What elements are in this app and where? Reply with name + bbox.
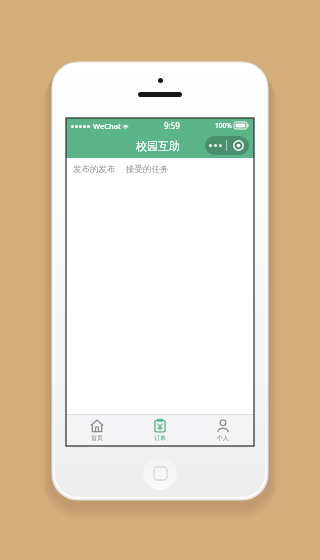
staticText: 校园互助 <box>136 139 180 153</box>
button[interactable]: More options <box>205 136 249 155</box>
staticText: 首页 <box>91 434 103 442</box>
staticText: WeChat <box>93 121 121 131</box>
staticText: 订单 <box>154 434 166 442</box>
button[interactable]: Home button <box>143 456 177 490</box>
staticText: 发布的发布 <box>73 164 116 175</box>
staticText: 9:59 <box>164 120 180 131</box>
staticText: 个人 <box>217 434 229 442</box>
button[interactable]: 个人 <box>191 415 254 446</box>
button[interactable]: 订单 <box>128 415 191 446</box>
button[interactable]: 首页 <box>66 415 128 446</box>
button[interactable]: 发布的发布 <box>72 161 117 178</box>
staticText: 接受的任务 <box>126 164 169 175</box>
button[interactable]: 接受的任务 <box>125 161 170 178</box>
staticText: 100% <box>215 121 232 130</box>
